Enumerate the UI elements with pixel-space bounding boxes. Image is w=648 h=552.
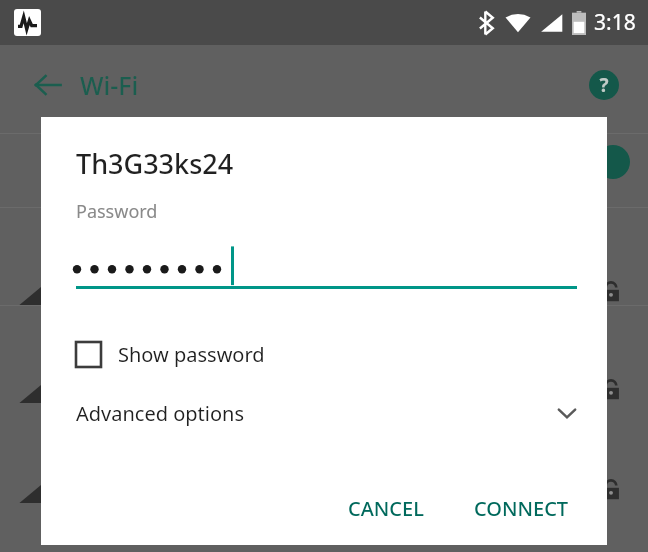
staticText: Wi-Fi bbox=[80, 68, 139, 102]
button[interactable]: Advanced options bbox=[41, 389, 607, 437]
staticText: CONNECT bbox=[474, 495, 569, 522]
button[interactable]: Help bbox=[578, 59, 630, 111]
button[interactable] bbox=[41, 242, 607, 286]
button[interactable]: Back bbox=[20, 57, 76, 113]
staticText: Advanced options bbox=[76, 400, 245, 427]
staticText: 3:18 bbox=[594, 8, 636, 37]
button[interactable]: Show password bbox=[41, 331, 607, 377]
staticText: Show password bbox=[118, 341, 265, 368]
button[interactable]: CONNECT bbox=[458, 485, 585, 532]
staticText: Password bbox=[76, 199, 158, 224]
button[interactable]: CANCEL bbox=[332, 485, 440, 532]
staticText: Th3G33ks24 bbox=[76, 145, 234, 182]
staticText: CANCEL bbox=[348, 495, 424, 522]
staticText: ? bbox=[599, 72, 609, 98]
